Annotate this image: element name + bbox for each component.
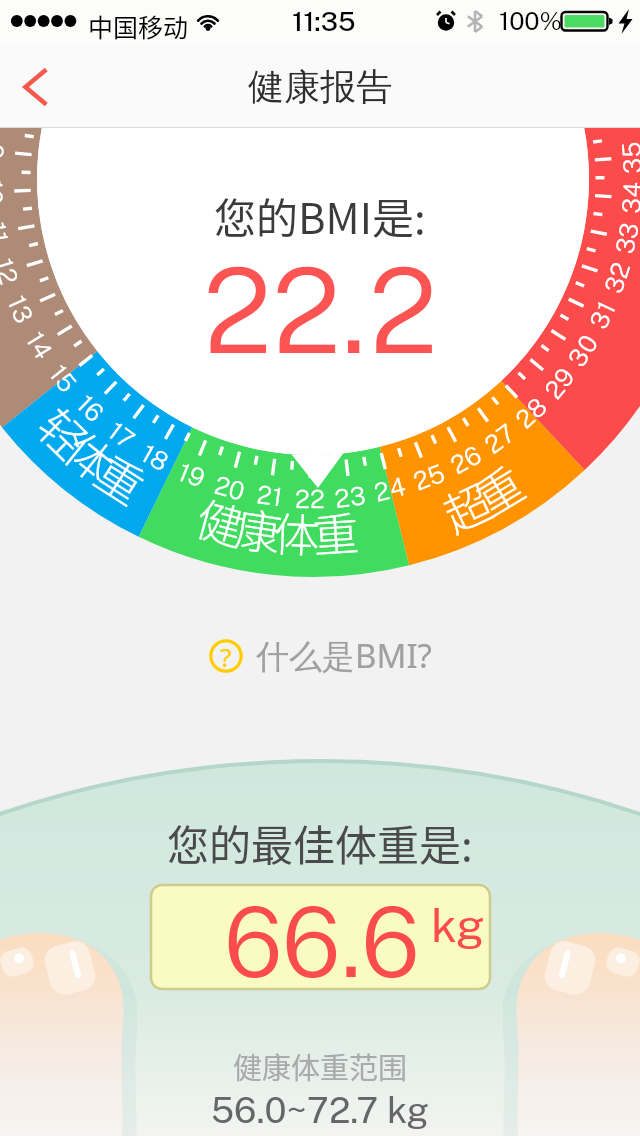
staticText: 66.6 [224, 886, 421, 999]
staticText: 您的最佳体重是: [167, 812, 473, 873]
staticText: 什么是BMI? [256, 633, 432, 678]
staticText: 您的BMI是: [214, 185, 426, 246]
staticText: 100% [499, 6, 563, 35]
button[interactable]: Back [8, 58, 66, 116]
staticText: 56.0~72.7 kg [211, 1089, 429, 1131]
staticText: ? [220, 639, 232, 673]
staticText: 中国移动 [88, 8, 189, 44]
staticText: 22.2 [203, 241, 438, 380]
staticText: kg [431, 898, 485, 952]
staticText: 健康报告 [248, 64, 392, 109]
staticText: 健康体重范围 [233, 1045, 408, 1087]
staticText: 11:35 [292, 5, 356, 37]
button[interactable]: ? [209, 633, 432, 678]
